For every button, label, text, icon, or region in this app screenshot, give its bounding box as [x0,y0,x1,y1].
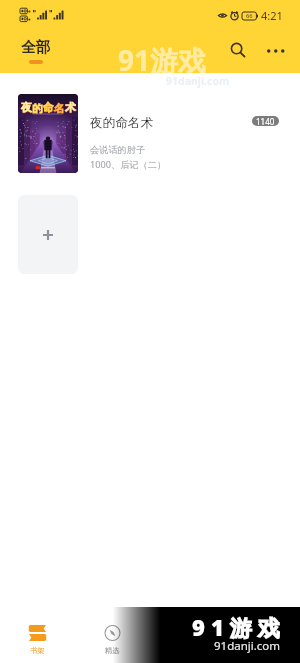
staticText: 命 [43,102,54,115]
staticText: 名 [54,103,65,116]
staticText: 91游戏 [192,612,286,642]
staticText: 91danji.com [214,638,281,654]
button[interactable] [150,617,225,663]
staticText: 的 [32,102,43,115]
staticText: 91danji.com [166,74,230,88]
staticText: 1000、后记（二） [90,158,167,171]
staticText: 命 [43,101,54,114]
button[interactable]: Add book [18,195,78,274]
staticText: 夜 [21,101,32,114]
staticText: 91游戏 [118,41,207,79]
button[interactable]: 书架 [0,617,75,663]
staticText: 会说话的肘子 [90,144,146,156]
button[interactable]: 精选 [75,617,150,663]
staticText: 书架 [30,646,45,655]
button[interactable]: More options [258,33,294,69]
staticText: 精选 [105,646,120,655]
button[interactable]: Search [220,32,256,68]
staticText: 4:21 [261,8,283,23]
button[interactable]: 全部 [13,38,59,64]
staticText: 全部 [21,38,51,56]
button[interactable]: 夜 [0,94,300,174]
button[interactable] [225,617,300,663]
staticText: 术 [65,101,76,114]
staticText: 术 [65,102,76,115]
staticText: 的 [32,103,43,116]
staticText: 名 [54,102,65,115]
staticText: 夜 [21,102,32,115]
staticText: 66 [246,12,253,20]
staticText: 1140 [256,116,275,126]
staticText: 夜的命名术 [90,115,252,131]
